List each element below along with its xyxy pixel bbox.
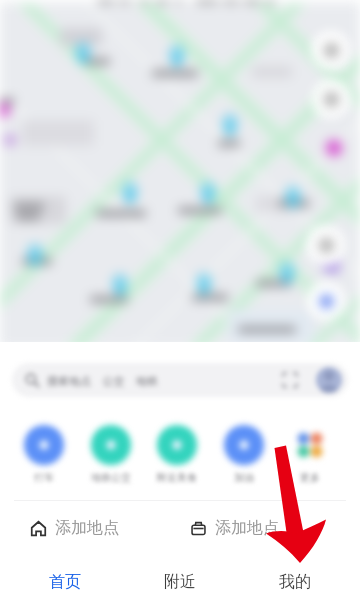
other: Annotation arrow (0, 0, 360, 590)
button[interactable]: 更多 (290, 425, 330, 484)
button[interactable]: 加油 (224, 425, 264, 484)
staticText: 更多 (300, 471, 320, 484)
staticText: 添加地点 (55, 518, 119, 538)
staticText: 搜索地点 公交 地铁 (47, 373, 282, 388)
button[interactable]: 打车 (24, 425, 64, 484)
staticText: 打车 (34, 471, 54, 484)
staticText: 附近美食 (157, 471, 197, 484)
staticText: 我的 (279, 572, 311, 590)
button[interactable]: 附近美食 (157, 425, 197, 484)
button[interactable]: Report (312, 80, 350, 118)
staticText: 加油 (234, 471, 254, 484)
button[interactable]: Map layers (312, 31, 350, 69)
button[interactable]: My location (307, 282, 345, 320)
button[interactable]: 地铁公交 (91, 425, 131, 484)
staticText: 首页 (49, 572, 81, 590)
staticText: 地铁公交 (91, 471, 131, 484)
staticText: 添加地点 (215, 518, 279, 538)
button[interactable]: 首页 (8, 561, 122, 590)
button[interactable]: Explore (307, 226, 345, 264)
button[interactable]: 我的 (237, 561, 352, 590)
button[interactable]: 搜索地点 公交 地铁 (12, 363, 348, 397)
button[interactable]: 添加地点 (0, 503, 180, 553)
button[interactable]: 附近 (122, 561, 237, 590)
button[interactable]: 添加地点 (180, 503, 360, 553)
staticText: 附近 (164, 572, 196, 590)
